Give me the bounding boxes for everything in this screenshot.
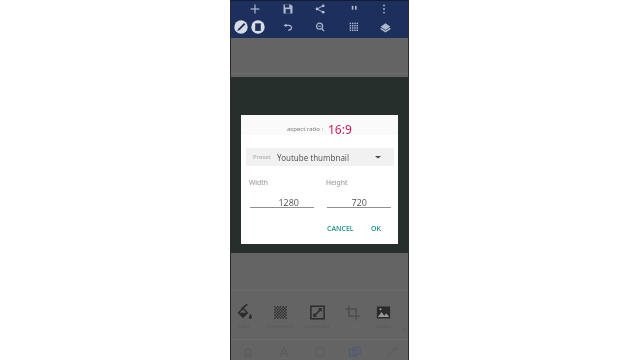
- button[interactable]: Save: [279, 0, 297, 18]
- button[interactable]: Quote: [345, 0, 363, 18]
- button[interactable]: CANCEL: [323, 221, 358, 237]
- button[interactable]: Preset: [246, 148, 394, 166]
- button[interactable]: Share: [311, 0, 329, 18]
- button[interactable]: OK: [367, 221, 385, 237]
- button[interactable]: Add: [246, 0, 264, 18]
- button[interactable]: More options: [375, 0, 393, 18]
- staticText: Width: [249, 178, 268, 187]
- staticText: Youtube thumbnail: [277, 152, 349, 163]
- button[interactable]: Grid: [345, 18, 363, 36]
- button[interactable]: Draw: [232, 18, 250, 36]
- staticText: Preset: [253, 153, 271, 161]
- staticText: 16:9: [328, 121, 352, 137]
- button[interactable]: Crop: [335, 305, 369, 332]
- staticText: 1280: [250, 196, 299, 208]
- staticText: OK: [371, 224, 381, 234]
- button[interactable]: Zoom: [311, 18, 329, 36]
- button[interactable]: Transparent: [263, 305, 297, 332]
- button[interactable]: Undo: [279, 18, 297, 36]
- button[interactable]: Color: [227, 305, 261, 332]
- staticText: CANCEL: [327, 224, 354, 234]
- button[interactable]: Image: [366, 305, 400, 332]
- staticText: Height: [326, 178, 348, 187]
- staticText: aspect ratio :: [287, 125, 324, 133]
- button[interactable]: Image size: [300, 305, 334, 332]
- button[interactable]: Layers: [376, 18, 394, 36]
- button[interactable]: Layers: [340, 342, 370, 360]
- button[interactable]: Eraser: [249, 18, 267, 36]
- staticText: 720: [327, 196, 367, 208]
